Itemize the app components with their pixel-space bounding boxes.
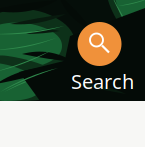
staticText: Search — [71, 68, 134, 95]
button[interactable]: Search — [77, 22, 121, 66]
